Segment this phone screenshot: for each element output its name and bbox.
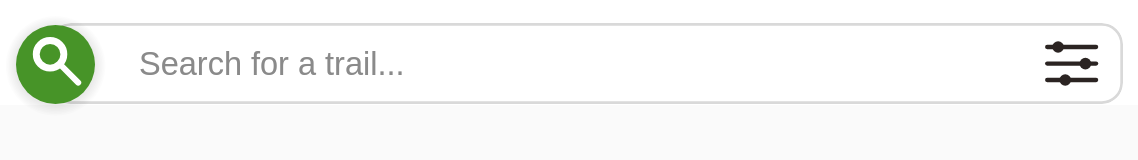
button[interactable]	[50, 23, 1123, 104]
button[interactable]: Filter	[1033, 31, 1103, 97]
button[interactable]: Search	[16, 25, 95, 104]
staticText: Search for a trail...	[139, 46, 405, 82]
